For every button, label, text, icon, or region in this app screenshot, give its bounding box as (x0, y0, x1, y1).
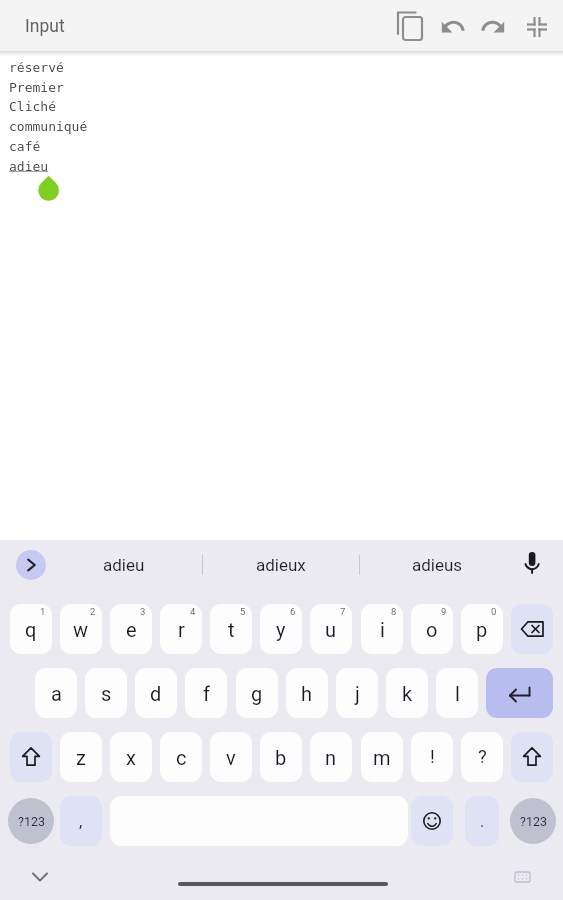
button[interactable] (178, 882, 388, 886)
staticText: a (51, 682, 62, 705)
staticText: p (476, 618, 488, 641)
button[interactable]: . (465, 796, 499, 846)
button[interactable] (518, 547, 546, 583)
staticText: k (402, 682, 413, 705)
button[interactable] (474, 7, 514, 47)
button[interactable]: s (85, 668, 127, 718)
button[interactable]: ?123 (510, 798, 556, 844)
button[interactable]: g (236, 668, 278, 718)
button[interactable]: c (160, 732, 202, 782)
staticText: 9 (441, 606, 447, 617)
button[interactable]: f (185, 668, 227, 718)
staticText: adieu (103, 555, 145, 575)
staticText: . (480, 812, 485, 831)
button[interactable]: t (210, 604, 252, 654)
staticText: 7 (340, 606, 346, 617)
button[interactable]: w (60, 604, 102, 654)
staticText: f (203, 682, 210, 705)
staticText: q (25, 618, 37, 641)
button[interactable] (511, 732, 553, 782)
staticText: v (226, 746, 236, 769)
button[interactable]: l (436, 668, 478, 718)
button[interactable] (517, 7, 557, 47)
button[interactable]: k (386, 668, 428, 718)
button[interactable] (514, 870, 532, 884)
staticText: communiqué (9, 119, 88, 134)
button[interactable]: n (310, 732, 352, 782)
button[interactable] (391, 7, 431, 47)
button[interactable] (511, 604, 553, 654)
button[interactable]: p (461, 604, 503, 654)
staticText: l (455, 682, 460, 705)
staticText: ?123 (520, 814, 547, 829)
button[interactable]: z (60, 732, 102, 782)
button[interactable]: x (110, 732, 152, 782)
button[interactable] (16, 550, 46, 580)
staticText: e (126, 618, 137, 641)
button[interactable]: u (310, 604, 352, 654)
staticText: Cliché (9, 99, 56, 114)
staticText: z (76, 746, 86, 769)
button[interactable] (411, 796, 453, 846)
button[interactable]: e (110, 604, 152, 654)
button[interactable]: ?123 (8, 798, 54, 844)
button[interactable]: b (260, 732, 302, 782)
staticText: r (178, 618, 185, 641)
button[interactable]: adieus (359, 543, 516, 587)
staticText: 5 (240, 606, 246, 617)
staticText: réservé (9, 60, 64, 75)
staticText: x (126, 746, 136, 769)
button[interactable]: , (60, 796, 102, 846)
button[interactable]: j (336, 668, 378, 718)
staticText: , (79, 811, 83, 831)
staticText: ! (430, 746, 435, 768)
staticText: g (251, 682, 263, 705)
button[interactable] (10, 732, 52, 782)
button[interactable]: ? (461, 732, 503, 782)
button[interactable]: m (361, 732, 403, 782)
button[interactable] (432, 7, 472, 47)
button[interactable]: d (135, 668, 177, 718)
staticText: 0 (491, 606, 497, 617)
staticText: adieus (412, 555, 463, 575)
button[interactable]: ! (411, 732, 453, 782)
staticText: h (301, 682, 313, 705)
button[interactable]: a (35, 668, 77, 718)
button[interactable]: r (160, 604, 202, 654)
staticText: 8 (391, 606, 397, 617)
button[interactable]: v (210, 732, 252, 782)
staticText: j (355, 682, 360, 705)
staticText: adieux (256, 555, 306, 575)
staticText: u (325, 618, 337, 641)
staticText: s (101, 682, 112, 705)
staticText: adieu (9, 159, 49, 174)
button[interactable]: y (260, 604, 302, 654)
staticText: ? (478, 746, 487, 768)
staticText: Premier (9, 80, 64, 95)
button[interactable] (28, 868, 52, 886)
staticText: w (73, 618, 89, 641)
staticText: i (380, 618, 385, 641)
staticText: n (325, 746, 337, 769)
button[interactable]: q (10, 604, 52, 654)
staticText: t (228, 618, 235, 641)
button[interactable]: h (286, 668, 328, 718)
staticText: 4 (190, 606, 196, 617)
staticText: 6 (290, 606, 296, 617)
staticText: o (426, 618, 438, 641)
staticText: 2 (90, 606, 96, 617)
button[interactable]: adieu (45, 543, 202, 587)
button[interactable]: adieux (202, 543, 359, 587)
button[interactable]: i (361, 604, 403, 654)
staticText: b (275, 746, 287, 769)
staticText: ?123 (18, 814, 45, 829)
button[interactable]: o (411, 604, 453, 654)
staticText: c (176, 746, 187, 769)
staticText: Input (25, 16, 65, 37)
staticText: 3 (140, 606, 146, 617)
staticText: 1 (40, 606, 46, 617)
staticText: d (150, 682, 162, 705)
staticText: m (373, 746, 391, 769)
button[interactable] (486, 668, 553, 718)
